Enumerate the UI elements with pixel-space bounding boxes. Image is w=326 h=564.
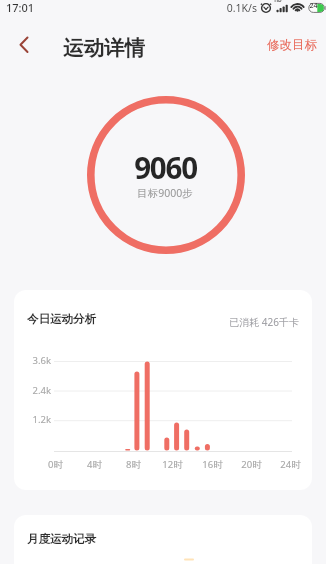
staticText: 修改目标 <box>267 37 317 53</box>
staticText: HD <box>274 0 282 4</box>
staticText: 0时 <box>48 458 63 471</box>
staticText: 运动详情 <box>63 35 145 61</box>
button[interactable]: 今日运动分析 <box>14 290 312 490</box>
staticText: 3.6k <box>32 354 51 367</box>
staticText: 1.2k <box>32 413 51 426</box>
button[interactable] <box>10 32 38 58</box>
staticText: 月度运动记录 <box>27 532 96 546</box>
staticText: 2.4k <box>32 384 51 397</box>
staticText: 17:01 <box>6 0 35 15</box>
staticText: 8时 <box>126 458 141 471</box>
staticText: 4时 <box>87 458 102 471</box>
staticText: 16时 <box>202 458 223 471</box>
staticText: 12时 <box>162 458 183 471</box>
staticText: 9060 <box>134 147 197 187</box>
staticText: 24时 <box>280 458 301 471</box>
staticText: 24 <box>309 1 318 11</box>
button[interactable]: 月度运动记录 <box>14 515 312 564</box>
staticText: 已消耗 426千卡 <box>229 315 299 329</box>
staticText: 目标9000步 <box>137 186 193 200</box>
staticText: 今日运动分析 <box>27 312 96 326</box>
staticText: 20时 <box>241 458 262 471</box>
button[interactable]: 修改目标 <box>262 34 322 56</box>
staticText: 0.1K/s <box>226 1 257 15</box>
